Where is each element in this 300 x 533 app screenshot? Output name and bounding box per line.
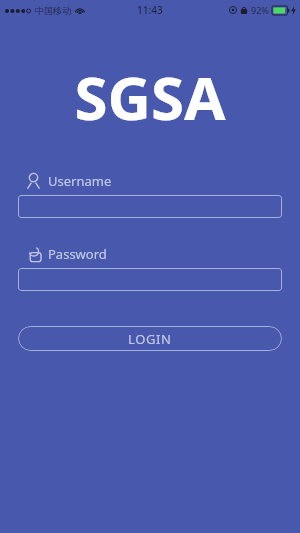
staticText: SGSA bbox=[74, 56, 226, 138]
staticText: Username bbox=[48, 172, 112, 190]
staticText: Password bbox=[48, 245, 107, 263]
button[interactable] bbox=[18, 268, 282, 291]
staticText: 中国移动 bbox=[35, 5, 71, 16]
button[interactable]: LOGIN bbox=[18, 326, 282, 351]
staticText: 11:43 bbox=[137, 3, 163, 17]
staticText: LOGIN bbox=[128, 330, 172, 348]
staticText: 92% bbox=[251, 4, 269, 16]
button[interactable] bbox=[18, 195, 282, 218]
